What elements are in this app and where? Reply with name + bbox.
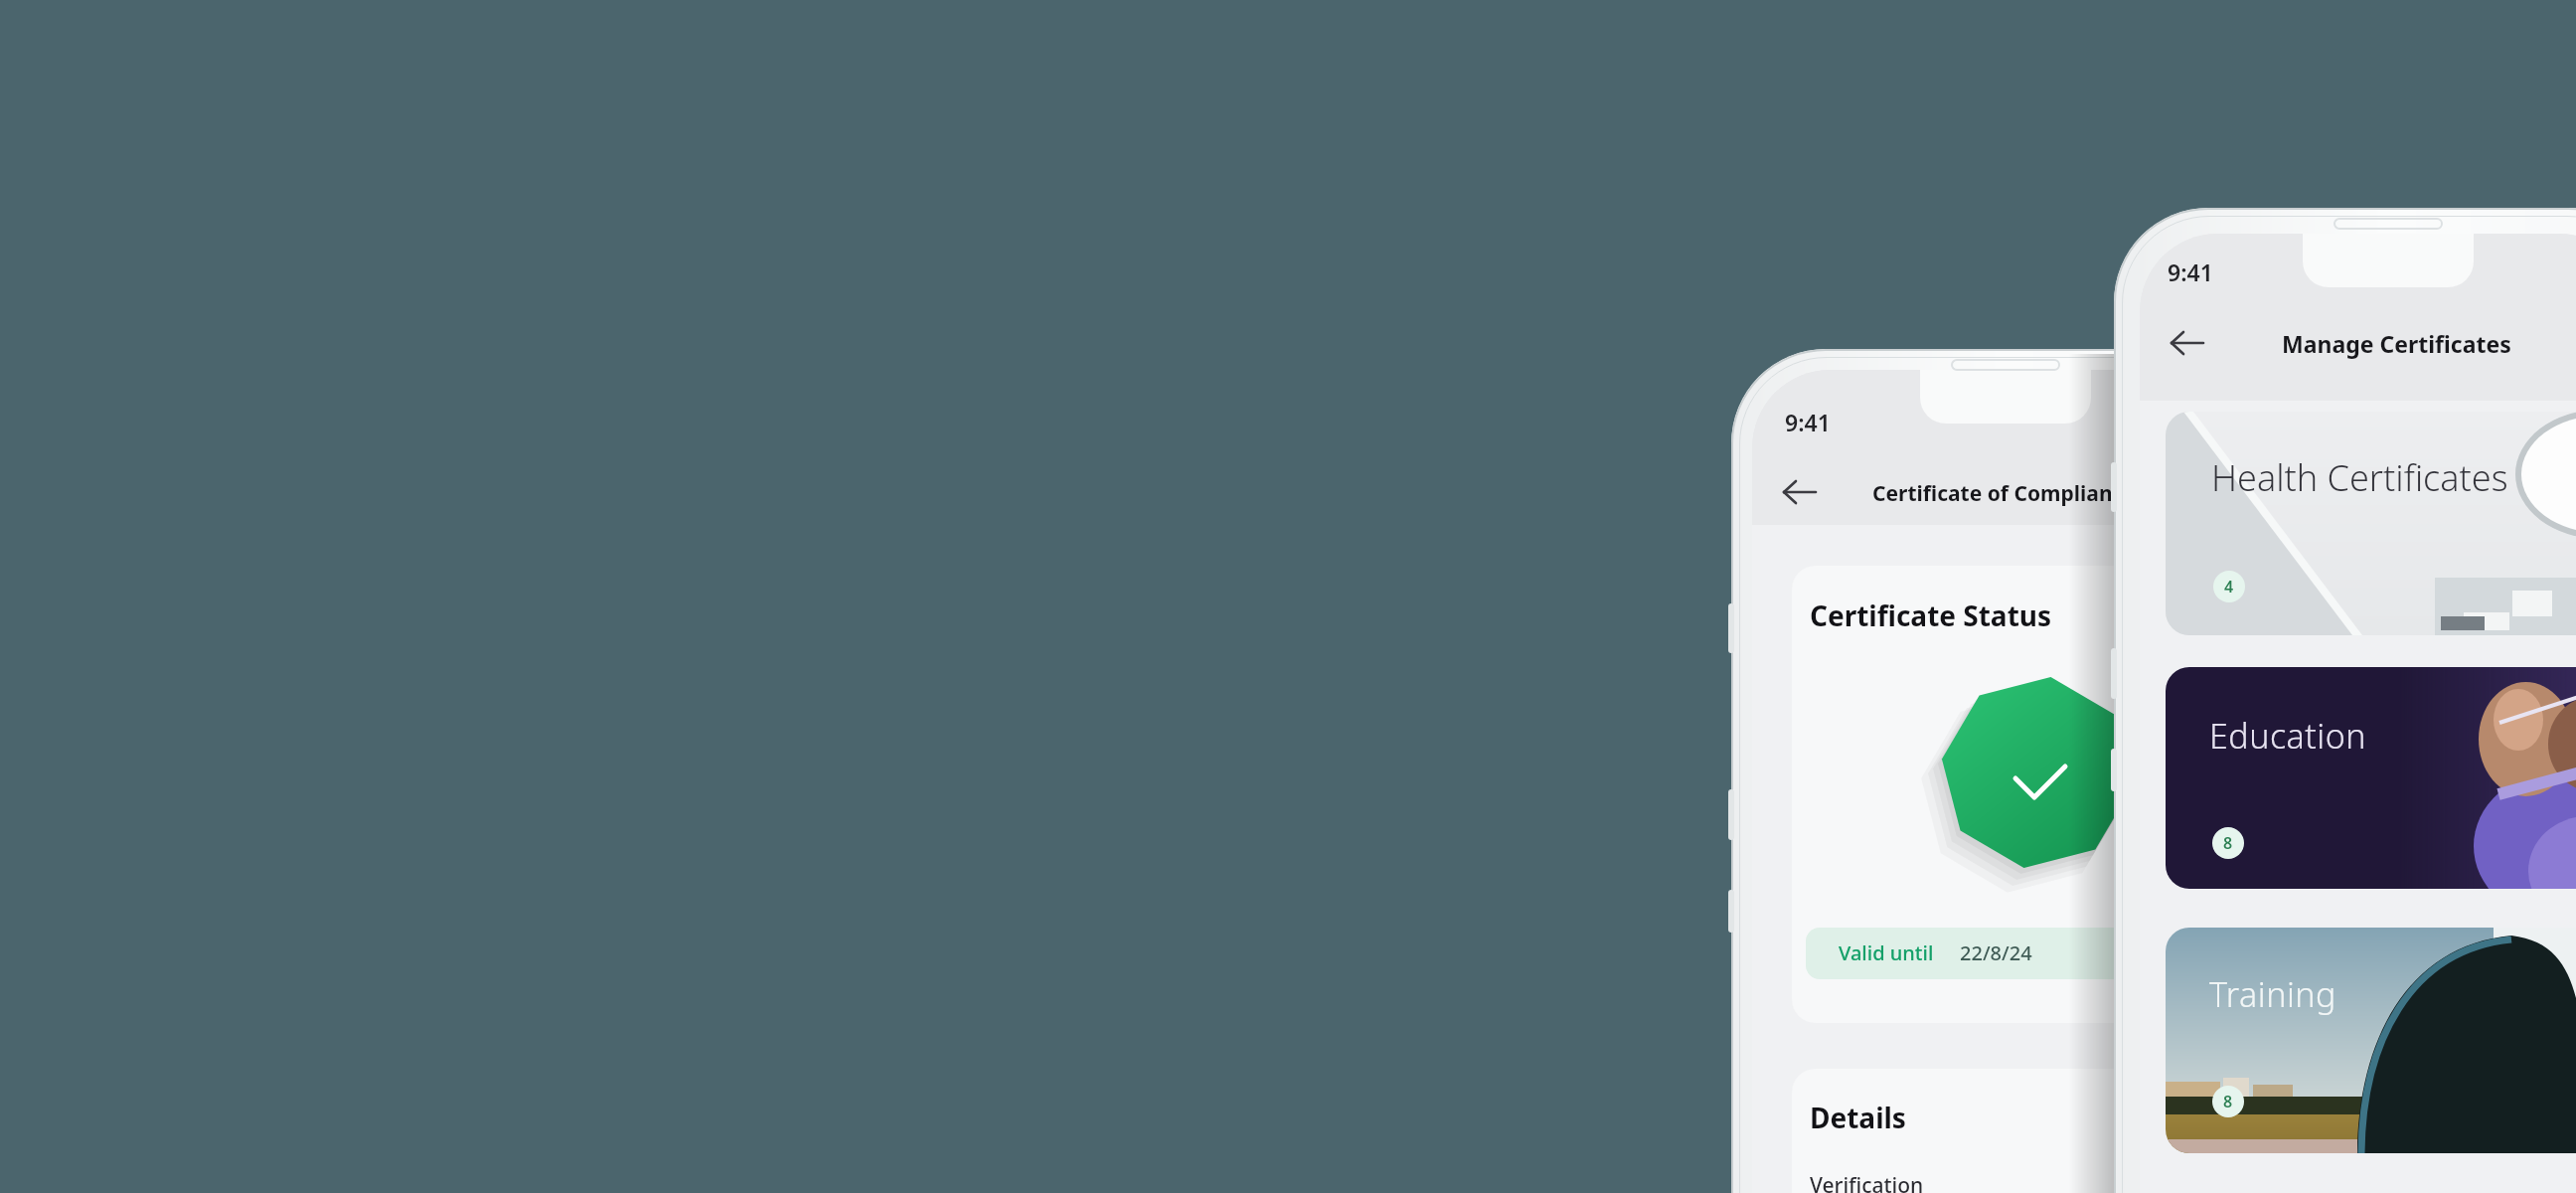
button[interactable]: 4 (2213, 571, 2245, 602)
staticText: Education (2209, 713, 2367, 759)
button[interactable]: Health Certificates (2166, 412, 2576, 635)
staticText: 4 (2224, 576, 2234, 597)
staticText: 8 (2223, 1091, 2233, 1112)
button[interactable] (1782, 478, 1818, 506)
button[interactable]: 8 (2212, 1086, 2244, 1117)
button[interactable]: Training (2166, 928, 2576, 1153)
staticText: Details (1810, 1099, 1906, 1136)
button[interactable] (1792, 1069, 2219, 1193)
staticText: 9:41 (1785, 407, 1831, 437)
staticText: Health Certificates (2211, 453, 2508, 502)
button[interactable]: 8 (2212, 827, 2244, 859)
staticText: Training (2209, 971, 2336, 1017)
staticText: Verification (1810, 1171, 1924, 1193)
staticText: Valid until (1839, 939, 1934, 966)
staticText: 8 (2223, 832, 2233, 854)
button[interactable] (1806, 928, 2205, 979)
button[interactable] (2170, 329, 2205, 357)
staticText: 9:41 (2168, 256, 2213, 287)
staticText: 22/8/24 (1960, 939, 2032, 966)
staticText: Certificate Status (1810, 596, 2052, 634)
staticText: Certificate of Compliance (1872, 479, 2136, 508)
button[interactable] (1792, 566, 2219, 1023)
button[interactable]: Education (2166, 667, 2576, 889)
staticText: Manage Certificates (2282, 328, 2511, 359)
